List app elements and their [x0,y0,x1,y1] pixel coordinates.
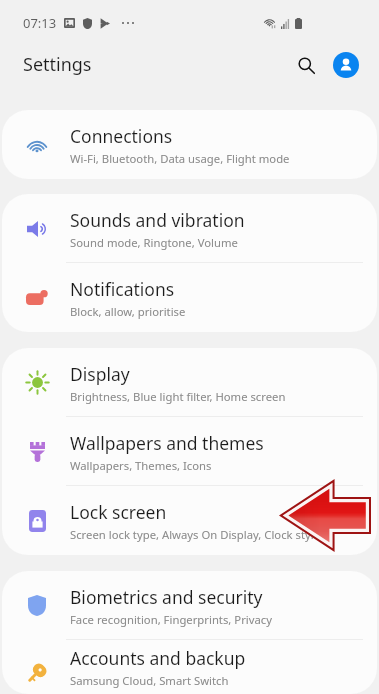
staticText: Accounts and backup [70,646,246,670]
staticText: Biometrics and security [70,585,263,609]
staticText: 07:13 [23,14,57,32]
staticText: Wallpapers, Themes, Icons [70,458,212,473]
button[interactable]: Wallpapers and themes [2,417,377,486]
staticText: Connections [70,124,173,148]
staticText: Brightness, Blue light filter, Home scre… [70,389,286,404]
staticText: Screen lock type, Always On Display, Clo… [70,527,321,542]
staticText: Wi-Fi, Bluetooth, Data usage, Flight mod… [70,151,290,166]
staticText: Block, allow, prioritise [70,304,186,319]
staticText: Sounds and vibration [70,208,245,232]
staticText: Wallpapers and themes [70,431,264,455]
button[interactable]: Display [2,348,377,417]
staticText: Sound mode, Ringtone, Volume [70,235,238,250]
button[interactable]: Search [288,47,324,83]
staticText: Samsung Cloud, Smart Switch [70,673,229,688]
staticText: Lock screen [70,500,167,524]
button[interactable]: Accounts and backup [2,640,377,694]
button[interactable]: Biometrics and security [2,571,377,640]
button[interactable]: Notifications [2,263,377,332]
button[interactable]: Account [328,47,364,83]
button[interactable]: Lock screen [2,486,377,555]
staticText: Display [70,362,130,386]
button[interactable]: Connections [2,110,377,179]
staticText: Notifications [70,277,175,301]
button[interactable]: Sounds and vibration [2,194,377,263]
staticText: Face recognition, Fingerprints, Privacy [70,612,273,627]
staticText: Settings [23,52,92,77]
